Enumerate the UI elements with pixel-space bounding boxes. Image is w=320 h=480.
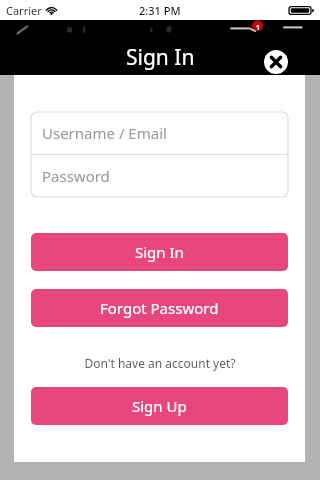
button[interactable]: Forgot Password bbox=[31, 289, 288, 327]
staticText: Forgot Password bbox=[100, 298, 219, 318]
staticText: Carrier bbox=[6, 3, 42, 18]
button[interactable]: Close bbox=[263, 49, 289, 75]
staticText: Username / Email bbox=[42, 123, 167, 143]
button[interactable]: Password bbox=[31, 155, 288, 197]
button[interactable]: Username / Email bbox=[31, 112, 288, 154]
staticText: Don't have an account yet? bbox=[84, 355, 236, 371]
staticText: Sign In bbox=[126, 43, 195, 72]
staticText: 2:31 PM bbox=[139, 3, 181, 18]
button[interactable]: Sign Up bbox=[31, 387, 288, 425]
button[interactable]: Sign In bbox=[31, 233, 288, 271]
staticText: Sign Up bbox=[132, 396, 187, 416]
staticText: 1 bbox=[256, 23, 261, 33]
staticText: Password bbox=[42, 166, 110, 186]
staticText: Sign In bbox=[135, 242, 184, 262]
